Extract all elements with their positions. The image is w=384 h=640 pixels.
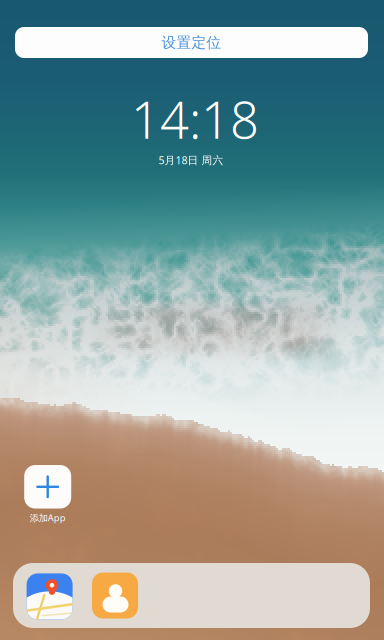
staticText: 14:18 (131, 85, 259, 153)
button[interactable]: 地图 (27, 573, 73, 619)
button[interactable]: 设置定位 (15, 27, 368, 58)
button[interactable]: 添加App (24, 465, 71, 524)
staticText: 添加App (30, 512, 66, 524)
staticText: 5月18日 周六 (158, 153, 223, 167)
button[interactable]: 通讯录 (92, 572, 138, 618)
staticText: 设置定位 (161, 33, 221, 51)
